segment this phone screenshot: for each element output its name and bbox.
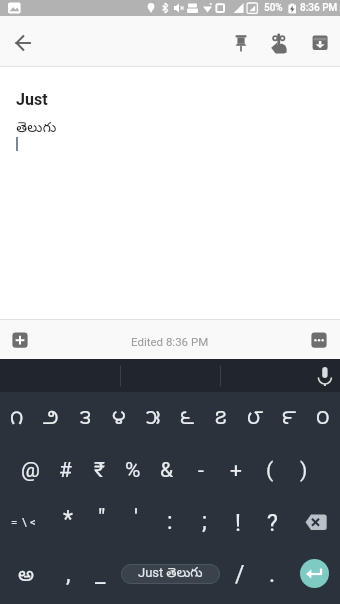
staticText: !: [235, 510, 241, 537]
staticText: \: [22, 515, 27, 528]
staticText: తెలుగు: [16, 120, 57, 139]
button[interactable]: [300, 559, 329, 588]
button[interactable]: ₹: [82, 448, 116, 492]
staticText: ౭: [215, 407, 227, 434]
staticText: <: [30, 515, 36, 528]
button[interactable]: ౫: [136, 400, 170, 440]
button[interactable]: ౯: [272, 400, 306, 440]
staticText: Just తెలుగు: [138, 565, 203, 583]
button[interactable]: ౬: [170, 400, 204, 440]
button[interactable]: ): [287, 448, 321, 492]
staticText: _: [95, 561, 106, 588]
button[interactable]: [265, 29, 291, 57]
staticText: *: [63, 506, 73, 533]
staticText: 50%: [264, 2, 283, 14]
button[interactable]: *: [51, 497, 85, 541]
staticText: ': [134, 505, 139, 532]
button[interactable]: [312, 362, 338, 388]
button[interactable]: \: [17, 506, 31, 536]
button[interactable]: ౩: [68, 400, 102, 440]
button[interactable]: %: [116, 448, 150, 492]
button[interactable]: -: [184, 448, 218, 492]
staticText: ,: [66, 561, 71, 588]
button[interactable]: [306, 29, 334, 57]
button[interactable]: <: [26, 506, 40, 536]
button[interactable]: ': [119, 496, 153, 540]
staticText: .: [269, 561, 276, 588]
button[interactable]: ౭: [204, 400, 238, 440]
staticText: ₹: [94, 458, 105, 483]
staticText: Edited 8:36 PM: [131, 335, 209, 348]
staticText: (: [266, 458, 274, 483]
staticText: :: [167, 508, 173, 535]
button[interactable]: #: [48, 448, 82, 492]
button[interactable]: తెలుగు: [16, 117, 136, 141]
staticText: ౧: [10, 407, 24, 434]
button[interactable]: ౧: [0, 400, 34, 440]
button[interactable]: =: [7, 506, 21, 536]
staticText: ౩: [80, 407, 91, 434]
button[interactable]: [8, 28, 38, 58]
staticText: -: [198, 458, 204, 483]
button[interactable]: Just తెలుగు: [121, 564, 220, 584]
button[interactable]: అ: [8, 557, 43, 597]
staticText: #: [59, 458, 72, 483]
staticText: Just: [16, 90, 48, 109]
button[interactable]: ౨: [34, 400, 68, 440]
staticText: ": [98, 505, 106, 532]
staticText: ?: [267, 510, 278, 537]
button[interactable]: [6, 326, 34, 354]
button[interactable]: [305, 326, 333, 354]
button[interactable]: @: [13, 448, 47, 492]
button[interactable]: ౪: [102, 400, 136, 440]
button[interactable]: ?: [255, 501, 289, 545]
staticText: ౫: [146, 407, 161, 434]
button[interactable]: +: [219, 448, 253, 492]
staticText: ౦: [316, 407, 330, 434]
staticText: /: [235, 561, 245, 588]
button[interactable]: ౦: [306, 400, 340, 440]
staticText: ;: [202, 508, 207, 535]
button[interactable]: :: [153, 499, 187, 543]
staticText: ౯: [282, 407, 296, 434]
staticText: ౮: [247, 407, 264, 434]
button[interactable]: ;: [187, 499, 221, 543]
button[interactable]: (: [253, 448, 287, 492]
button[interactable]: /: [223, 552, 257, 596]
staticText: 8:36 PM: [300, 2, 338, 14]
button[interactable]: !: [221, 501, 255, 545]
button[interactable]: _: [83, 552, 118, 596]
staticText: @: [21, 458, 40, 483]
staticText: =: [11, 515, 18, 528]
staticText: ): [300, 458, 308, 483]
staticText: &: [160, 458, 174, 483]
staticText: +: [230, 458, 242, 483]
button[interactable]: [228, 29, 254, 57]
staticText: ౪: [112, 407, 126, 434]
staticText: ౬: [180, 407, 194, 434]
button[interactable]: ": [85, 496, 119, 540]
button[interactable]: Just: [16, 88, 136, 110]
button[interactable]: [298, 505, 334, 539]
button[interactable]: ,: [51, 552, 85, 596]
staticText: %: [125, 458, 141, 483]
button[interactable]: ౮: [238, 400, 272, 440]
button[interactable]: .: [255, 552, 289, 596]
staticText: అ: [18, 564, 34, 591]
button[interactable]: &: [150, 448, 184, 492]
staticText: ౨: [43, 407, 59, 434]
